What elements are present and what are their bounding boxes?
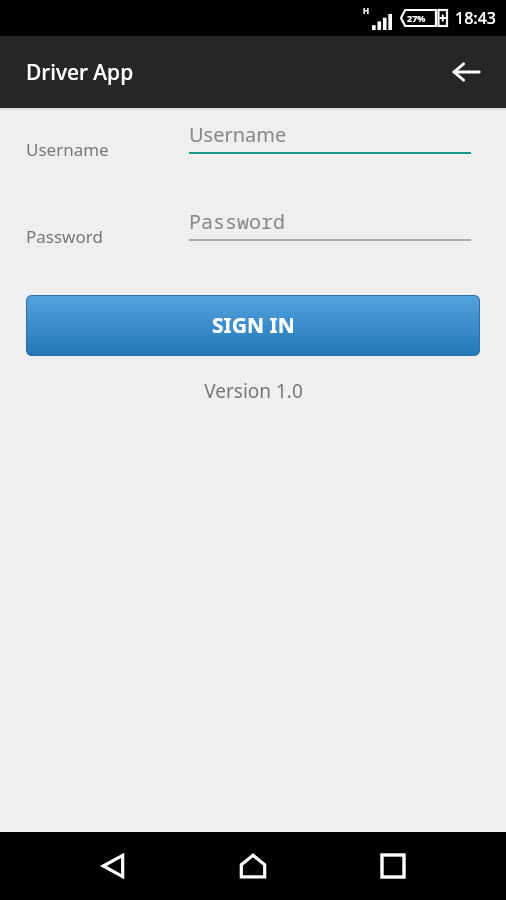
button[interactable]: Back xyxy=(83,836,143,896)
staticText: Password xyxy=(26,225,103,248)
staticText: Username xyxy=(26,138,109,161)
staticText: 18:43 xyxy=(455,7,496,29)
staticText: 27% xyxy=(407,12,426,24)
staticText: Driver App xyxy=(26,58,134,87)
button[interactable]: Back xyxy=(440,46,492,98)
staticText: SIGN IN xyxy=(212,311,295,340)
button[interactable]: Recent apps xyxy=(363,836,423,896)
staticText: Password xyxy=(189,208,285,235)
staticText: Version 1.0 xyxy=(204,378,303,404)
staticText: H xyxy=(363,5,370,16)
staticText: Username xyxy=(189,121,287,148)
button[interactable]: Home xyxy=(223,836,283,896)
button[interactable]: SIGN IN xyxy=(26,295,480,356)
